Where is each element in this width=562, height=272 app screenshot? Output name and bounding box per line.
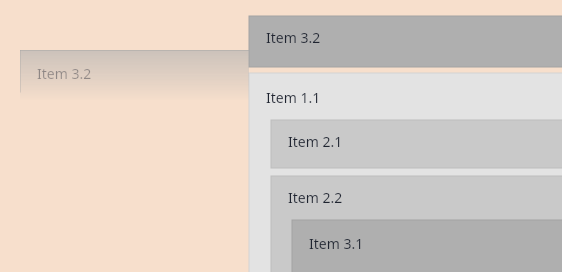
staticText: Item 3.2	[37, 64, 92, 83]
button[interactable]: Dragging Item 3.2	[20, 50, 249, 100]
button[interactable]: Item 2.1	[271, 120, 562, 168]
button[interactable]: Item 2.2	[271, 176, 562, 272]
button[interactable]: Item 1.1	[249, 73, 562, 272]
button[interactable]: Item 3.2	[249, 16, 562, 67]
staticText: Item 3.1	[309, 234, 364, 253]
staticText: Item 1.1	[266, 88, 321, 107]
staticText: Item 2.1	[288, 132, 343, 151]
staticText: Item 2.2	[288, 188, 343, 207]
button[interactable]: Item 3.1	[292, 220, 562, 272]
staticText: Item 3.2	[266, 28, 321, 47]
